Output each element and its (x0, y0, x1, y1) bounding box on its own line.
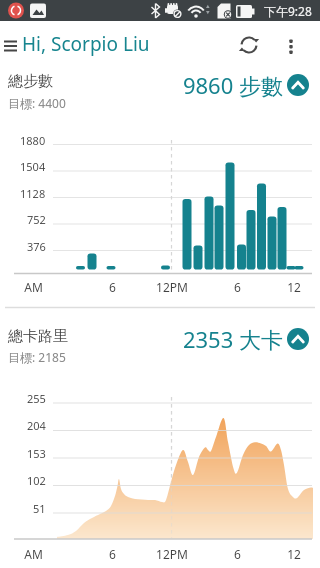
staticText: 204 (27, 418, 46, 433)
button[interactable] (0, 28, 28, 56)
staticText: 752 (27, 212, 46, 227)
staticText: 1504 (20, 159, 46, 174)
staticText: 6 (234, 279, 241, 295)
staticText: 總卡路里 (8, 327, 68, 346)
staticText: 9860 步數 (160, 70, 283, 100)
staticText: 255 (27, 391, 46, 406)
staticText: 6 (109, 546, 116, 562)
staticText: 6 (109, 279, 116, 295)
button[interactable] (234, 30, 264, 60)
staticText: 1128 (20, 186, 46, 201)
staticText: 下午9:28 (264, 3, 312, 19)
button[interactable]: 2353 大卡 (160, 322, 310, 356)
staticText: 目標: 2185 (8, 349, 66, 365)
staticText: 51 (33, 501, 46, 516)
staticText: Hi, Scorpio Liu (22, 31, 150, 57)
staticText: 12 (287, 546, 301, 562)
staticText: AM (24, 279, 43, 295)
staticText: 目標: 4400 (8, 95, 66, 111)
staticText: 153 (27, 446, 46, 461)
staticText: 12PM (156, 546, 188, 562)
staticText: 12PM (156, 279, 188, 295)
button[interactable]: 9860 步數 (160, 68, 310, 102)
staticText: 376 (27, 239, 46, 254)
staticText: 2353 大卡 (160, 324, 283, 354)
staticText: AM (24, 546, 43, 562)
staticText: 102 (27, 473, 46, 488)
staticText: 1880 (20, 133, 46, 148)
staticText: 6 (234, 546, 241, 562)
staticText: 12 (287, 279, 301, 295)
button[interactable] (278, 32, 306, 60)
staticText: 總步數 (8, 72, 53, 91)
